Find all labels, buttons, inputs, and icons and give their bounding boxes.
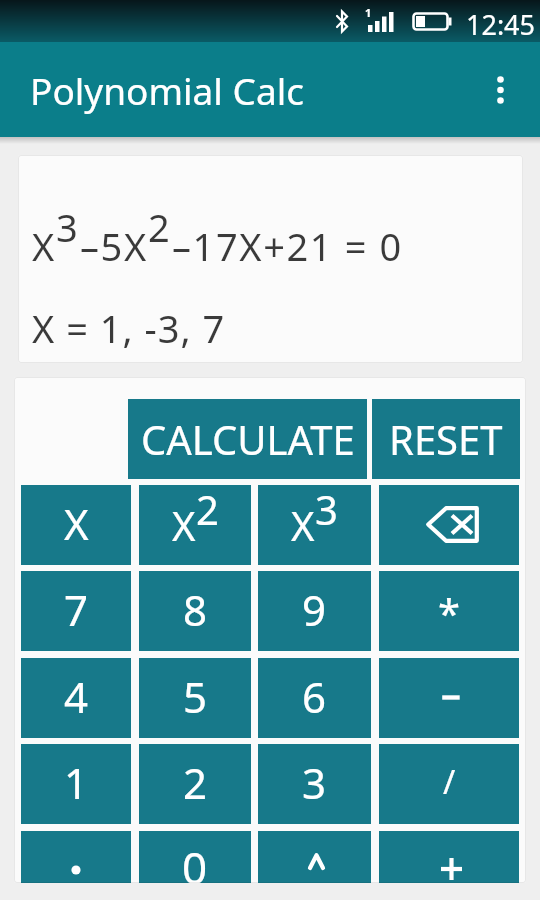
staticText: 12:45 xyxy=(466,6,536,43)
staticText: X = 1, -3, 7 xyxy=(32,302,226,354)
button[interactable]: * xyxy=(379,571,519,651)
staticText: 2 xyxy=(196,482,219,536)
staticText: X xyxy=(172,498,196,552)
staticText: 2 xyxy=(183,754,208,811)
staticText: 6 xyxy=(302,668,327,725)
staticText: * xyxy=(438,585,461,639)
button[interactable]: 5 xyxy=(139,658,251,738)
staticText: 7 xyxy=(64,581,89,638)
staticText: 2 xyxy=(148,201,172,253)
staticText: 9 xyxy=(302,581,327,638)
button[interactable]: 6 xyxy=(258,658,371,738)
button[interactable]: X xyxy=(258,485,371,565)
button[interactable]: RESET xyxy=(372,399,520,479)
button[interactable]: X xyxy=(21,485,131,565)
staticText: 1 xyxy=(64,754,89,811)
staticText: X xyxy=(291,498,315,552)
staticText: 3 xyxy=(302,754,327,811)
button[interactable] xyxy=(21,831,131,883)
staticText: / xyxy=(443,759,456,804)
button[interactable]: 3 xyxy=(258,744,371,824)
button[interactable]: 9 xyxy=(258,571,371,651)
button[interactable] xyxy=(379,658,519,738)
staticText: Polynomial Calc xyxy=(30,65,304,115)
staticText: RESET xyxy=(389,412,503,466)
staticText: 0 xyxy=(182,837,208,883)
button[interactable]: / xyxy=(379,744,519,824)
staticText: 3 xyxy=(315,482,338,536)
staticText: 1 xyxy=(365,5,372,20)
button[interactable]: X xyxy=(139,485,251,565)
button[interactable]: CALCULATE xyxy=(128,399,367,479)
button[interactable]: 7 xyxy=(21,571,131,651)
button[interactable]: 8 xyxy=(139,571,251,651)
staticText: –17X+21 = 0 xyxy=(172,220,403,272)
staticText: X xyxy=(32,220,56,272)
button[interactable] xyxy=(379,831,519,883)
staticText: 5 xyxy=(183,668,208,725)
button[interactable]: 0 xyxy=(139,831,251,883)
button[interactable] xyxy=(379,485,519,565)
staticText: 4 xyxy=(64,668,89,725)
staticText: 8 xyxy=(183,581,208,638)
button[interactable] xyxy=(482,60,518,120)
button[interactable]: 2 xyxy=(139,744,251,824)
button[interactable]: 4 xyxy=(21,658,131,738)
button[interactable]: 1 xyxy=(21,744,131,824)
staticText: CALCULATE xyxy=(141,412,355,466)
staticText: –5X xyxy=(80,220,148,272)
staticText: 3 xyxy=(56,201,80,253)
staticText: X xyxy=(64,495,89,552)
button[interactable] xyxy=(258,831,371,883)
